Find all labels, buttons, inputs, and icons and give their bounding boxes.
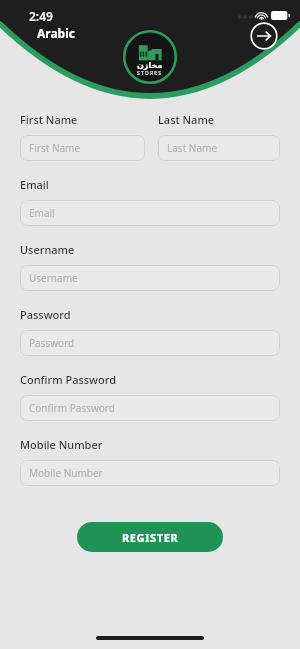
staticText: Last Name [167, 141, 218, 155]
button[interactable]: Mobile Number [20, 460, 280, 486]
staticText: Arabic [37, 25, 75, 41]
staticText: First Name [20, 112, 78, 127]
staticText: REGISTER [122, 530, 179, 545]
staticText: Last Name [158, 112, 215, 127]
staticText: Email [20, 177, 49, 192]
staticText: 2:49 [29, 8, 53, 24]
button[interactable]: Last Name [158, 135, 280, 161]
button[interactable]: Username [20, 265, 280, 291]
button[interactable]: Next [250, 22, 278, 50]
staticText: Username [29, 271, 78, 285]
staticText: Confirm Password [29, 401, 115, 415]
button[interactable]: Stores logo [122, 29, 178, 85]
staticText: Email [29, 206, 55, 220]
button[interactable]: First Name [20, 135, 145, 161]
staticText: Mobile Number [29, 466, 103, 480]
staticText: Password [20, 307, 71, 322]
staticText: Mobile Number [20, 437, 103, 452]
staticText: Username [20, 242, 75, 257]
staticText: Password [29, 336, 75, 350]
button[interactable]: Email [20, 200, 280, 226]
staticText: STORES [137, 70, 163, 77]
staticText: مخازن [137, 61, 163, 70]
staticText: Confirm Password [20, 372, 116, 387]
button[interactable]: Password [20, 330, 280, 356]
button[interactable]: REGISTER [77, 522, 223, 552]
button[interactable]: Confirm Password [20, 395, 280, 421]
staticText: First Name [29, 141, 81, 155]
